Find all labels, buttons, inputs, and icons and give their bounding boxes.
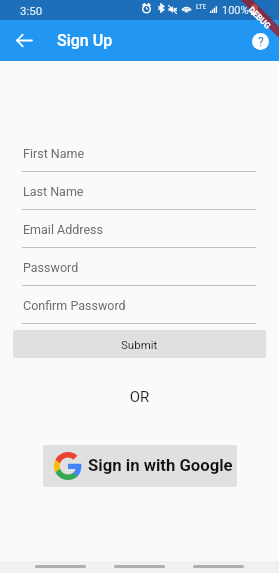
- button[interactable]: Back: [8, 24, 40, 56]
- staticText: Last Name: [23, 184, 84, 199]
- staticText: OR: [0, 388, 279, 406]
- staticText: 3:50: [20, 4, 43, 17]
- staticText: Submit: [121, 338, 158, 351]
- staticText: 100%: [222, 4, 249, 17]
- staticText: DEBUG: [247, 5, 273, 31]
- button[interactable]: Email Address: [0, 211, 279, 249]
- button[interactable]: Password: [0, 249, 279, 287]
- staticText: Sign Up: [57, 31, 113, 50]
- button[interactable]: Submit: [13, 330, 266, 358]
- button[interactable]: Help: [246, 27, 274, 55]
- staticText: Email Address: [23, 222, 103, 237]
- staticText: Password: [23, 260, 79, 275]
- staticText: First Name: [23, 146, 85, 161]
- button[interactable]: Recents: [35, 565, 86, 568]
- button[interactable]: Confirm Password: [0, 287, 279, 325]
- staticText: ?: [258, 35, 264, 49]
- button[interactable]: Home: [114, 565, 165, 568]
- staticText: Confirm Password: [23, 298, 126, 313]
- staticText: LTE: [196, 3, 207, 11]
- button[interactable]: Last Name: [0, 173, 279, 211]
- button[interactable]: First Name: [0, 135, 279, 173]
- staticText: Sign in with Google: [88, 456, 233, 476]
- button[interactable]: Back: [193, 565, 244, 568]
- button[interactable]: Sign in with Google: [43, 445, 237, 487]
